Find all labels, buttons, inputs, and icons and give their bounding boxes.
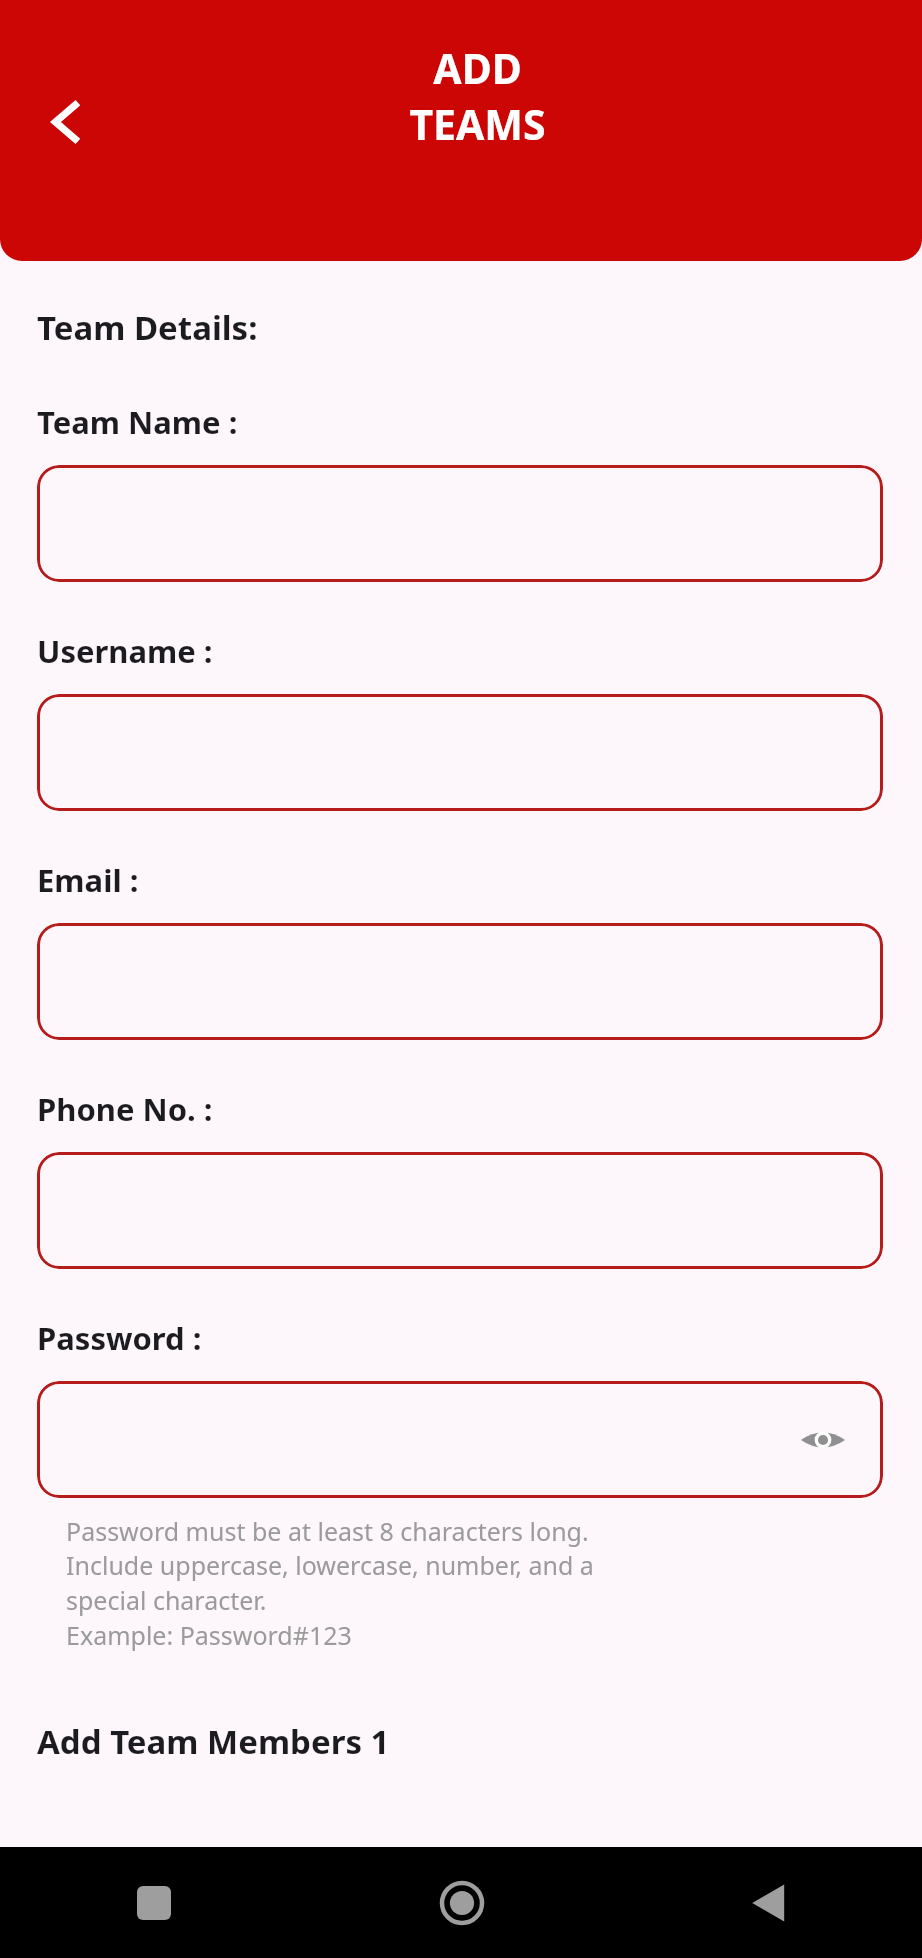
staticText: ADD TEAMS [409,40,546,152]
staticText: Team Details: [37,305,258,350]
button[interactable]: Back [22,78,110,166]
staticText: Team Name : [37,401,238,443]
button[interactable] [37,923,883,1040]
staticText: Password must be at least 8 characters l… [66,1514,594,1653]
button[interactable] [37,465,883,582]
button[interactable] [37,694,883,811]
staticText: Email : [37,859,139,901]
staticText: Add Team Members 1 [37,1719,390,1764]
staticText: Phone No. : [37,1088,213,1130]
button[interactable]: Show password [795,1412,851,1468]
button[interactable]: Show password [37,1381,883,1498]
staticText: Username : [37,630,213,672]
button[interactable]: Recent apps [0,1847,308,1958]
staticText: Password : [37,1317,202,1359]
button[interactable] [37,1152,883,1269]
button[interactable]: Home [308,1847,615,1958]
button[interactable]: Back [615,1847,922,1958]
